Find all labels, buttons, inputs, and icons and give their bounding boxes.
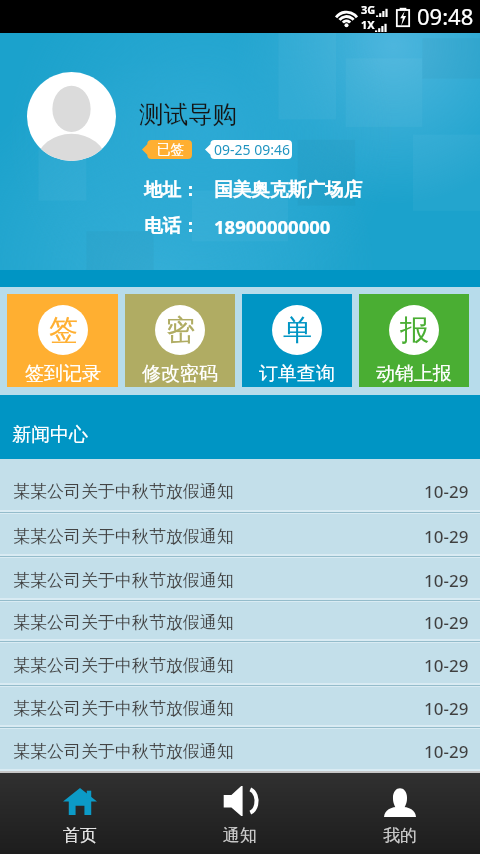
staticText: 1X [361, 17, 375, 32]
staticText: 某某公司关于中秋节放假通知 [13, 741, 234, 762]
staticText: 10-29 [424, 611, 469, 634]
button[interactable]: 某某公司关于中秋节放假通知 [0, 643, 480, 685]
staticText: 测试导购 [139, 99, 237, 130]
staticText: 修改密码 [142, 362, 218, 386]
staticText: 单 [283, 312, 312, 349]
button[interactable]: 密 [125, 294, 235, 387]
staticText: 首页 [63, 825, 97, 846]
staticText: 新闻中心 [12, 423, 88, 447]
staticText: 电话： [144, 214, 200, 237]
staticText: 我的 [383, 825, 417, 846]
staticText: 09:48 [417, 1, 474, 31]
staticText: 国美奥克斯广场店 [214, 178, 362, 201]
staticText: 签 [49, 312, 78, 349]
other: Profile photo [27, 72, 116, 161]
staticText: 18900000000 [214, 214, 331, 239]
staticText: 某某公司关于中秋节放假通知 [13, 481, 234, 502]
button[interactable]: 首页 [0, 773, 160, 854]
button[interactable]: 报 [359, 294, 469, 387]
staticText: 10-29 [424, 654, 469, 677]
staticText: 3G [361, 2, 376, 17]
button[interactable]: 签 [7, 294, 118, 387]
button[interactable]: 某某公司关于中秋节放假通知 [0, 514, 480, 556]
staticText: 签到记录 [25, 362, 101, 386]
button[interactable]: 某某公司关于中秋节放假通知 [0, 729, 480, 771]
staticText: 地址： [144, 178, 200, 201]
staticText: 已签 [157, 141, 184, 158]
staticText: 10-29 [424, 569, 469, 592]
staticText: 10-29 [424, 740, 469, 763]
staticText: 10-29 [424, 697, 469, 720]
staticText: 某某公司关于中秋节放假通知 [13, 655, 234, 676]
staticText: 某某公司关于中秋节放假通知 [13, 612, 234, 633]
staticText: 10-29 [424, 525, 469, 548]
staticText: 某某公司关于中秋节放假通知 [13, 698, 234, 719]
staticText: 通知 [223, 825, 257, 846]
staticText: 09-25 09:46 [214, 140, 290, 159]
button[interactable]: 某某公司关于中秋节放假通知 [0, 459, 480, 512]
button[interactable]: 通知 [160, 773, 320, 854]
button[interactable]: 已签 [142, 140, 192, 159]
button[interactable]: 某某公司关于中秋节放假通知 [0, 687, 480, 727]
button[interactable]: 某某公司关于中秋节放假通知 [0, 558, 480, 600]
staticText: 10-29 [424, 480, 469, 503]
staticText: 某某公司关于中秋节放假通知 [13, 570, 234, 591]
staticText: 订单查询 [259, 362, 335, 386]
button[interactable]: 我的 [320, 773, 480, 854]
staticText: 某某公司关于中秋节放假通知 [13, 526, 234, 547]
button[interactable]: 某某公司关于中秋节放假通知 [0, 602, 480, 641]
staticText: 报 [400, 312, 429, 349]
staticText: 动销上报 [376, 362, 452, 386]
button[interactable]: 单 [242, 294, 352, 387]
staticText: 密 [166, 312, 195, 349]
